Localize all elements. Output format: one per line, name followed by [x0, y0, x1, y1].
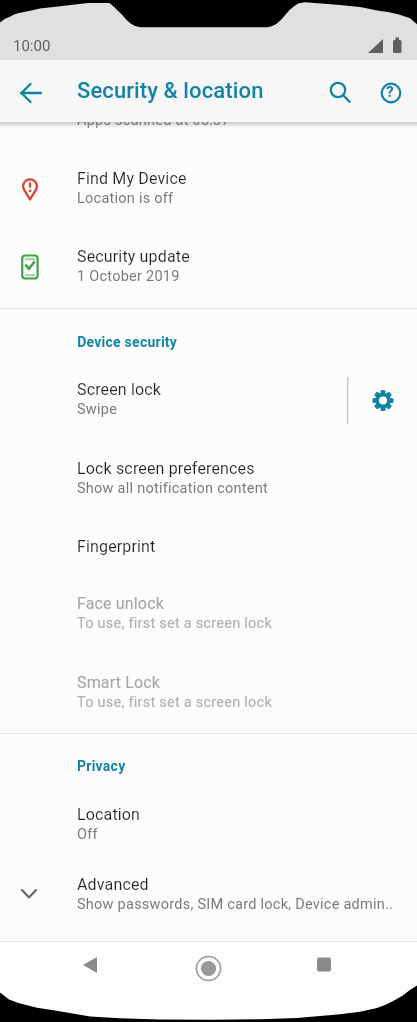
staticText: ?: [386, 83, 394, 101]
staticText: Location: [77, 805, 141, 824]
staticText: 10:00: [13, 37, 51, 55]
staticText: Lock screen preferences: [77, 459, 255, 478]
staticText: Security & location: [77, 78, 264, 104]
staticText: Show all notification content: [77, 480, 268, 497]
staticText: Find My Device: [77, 169, 187, 188]
button[interactable]: Lock screen preferences: [0, 459, 417, 516]
button[interactable]: [322, 75, 354, 107]
staticText: Location is off: [77, 190, 174, 207]
staticText: To use, first set a screen lock: [77, 694, 273, 711]
staticText: Off: [77, 826, 98, 843]
button[interactable]: Face unlock: [0, 594, 417, 651]
staticText: Swipe: [77, 401, 118, 418]
button[interactable]: [186, 947, 231, 991]
button[interactable]: [302, 949, 346, 989]
button[interactable]: [70, 949, 114, 989]
staticText: Device security: [77, 334, 177, 350]
button[interactable]: Advanced: [0, 875, 417, 935]
button[interactable]: Security update: [0, 247, 417, 304]
staticText: Apps scanned at 08:37: [77, 112, 230, 129]
button[interactable]: Fingerprint: [0, 537, 417, 577]
button[interactable]: [8, 78, 54, 108]
button[interactable]: [375, 77, 407, 109]
button[interactable]: Smart Lock: [0, 673, 417, 730]
button[interactable]: Screen lock: [0, 380, 417, 437]
staticText: Smart Lock: [77, 673, 160, 692]
staticText: Show passwords, SIM card lock, Device ad…: [77, 896, 394, 913]
staticText: Face unlock: [77, 594, 164, 613]
staticText: To use, first set a screen lock: [77, 615, 273, 632]
staticText: Screen lock: [77, 380, 162, 399]
staticText: 1 October 2019: [77, 268, 180, 285]
staticText: Fingerprint: [77, 537, 156, 556]
button[interactable]: Find My Device: [0, 169, 417, 226]
staticText: Security update: [77, 247, 190, 266]
staticText: Privacy: [77, 758, 126, 774]
staticText: Advanced: [77, 875, 149, 894]
button[interactable]: Location: [0, 805, 417, 862]
